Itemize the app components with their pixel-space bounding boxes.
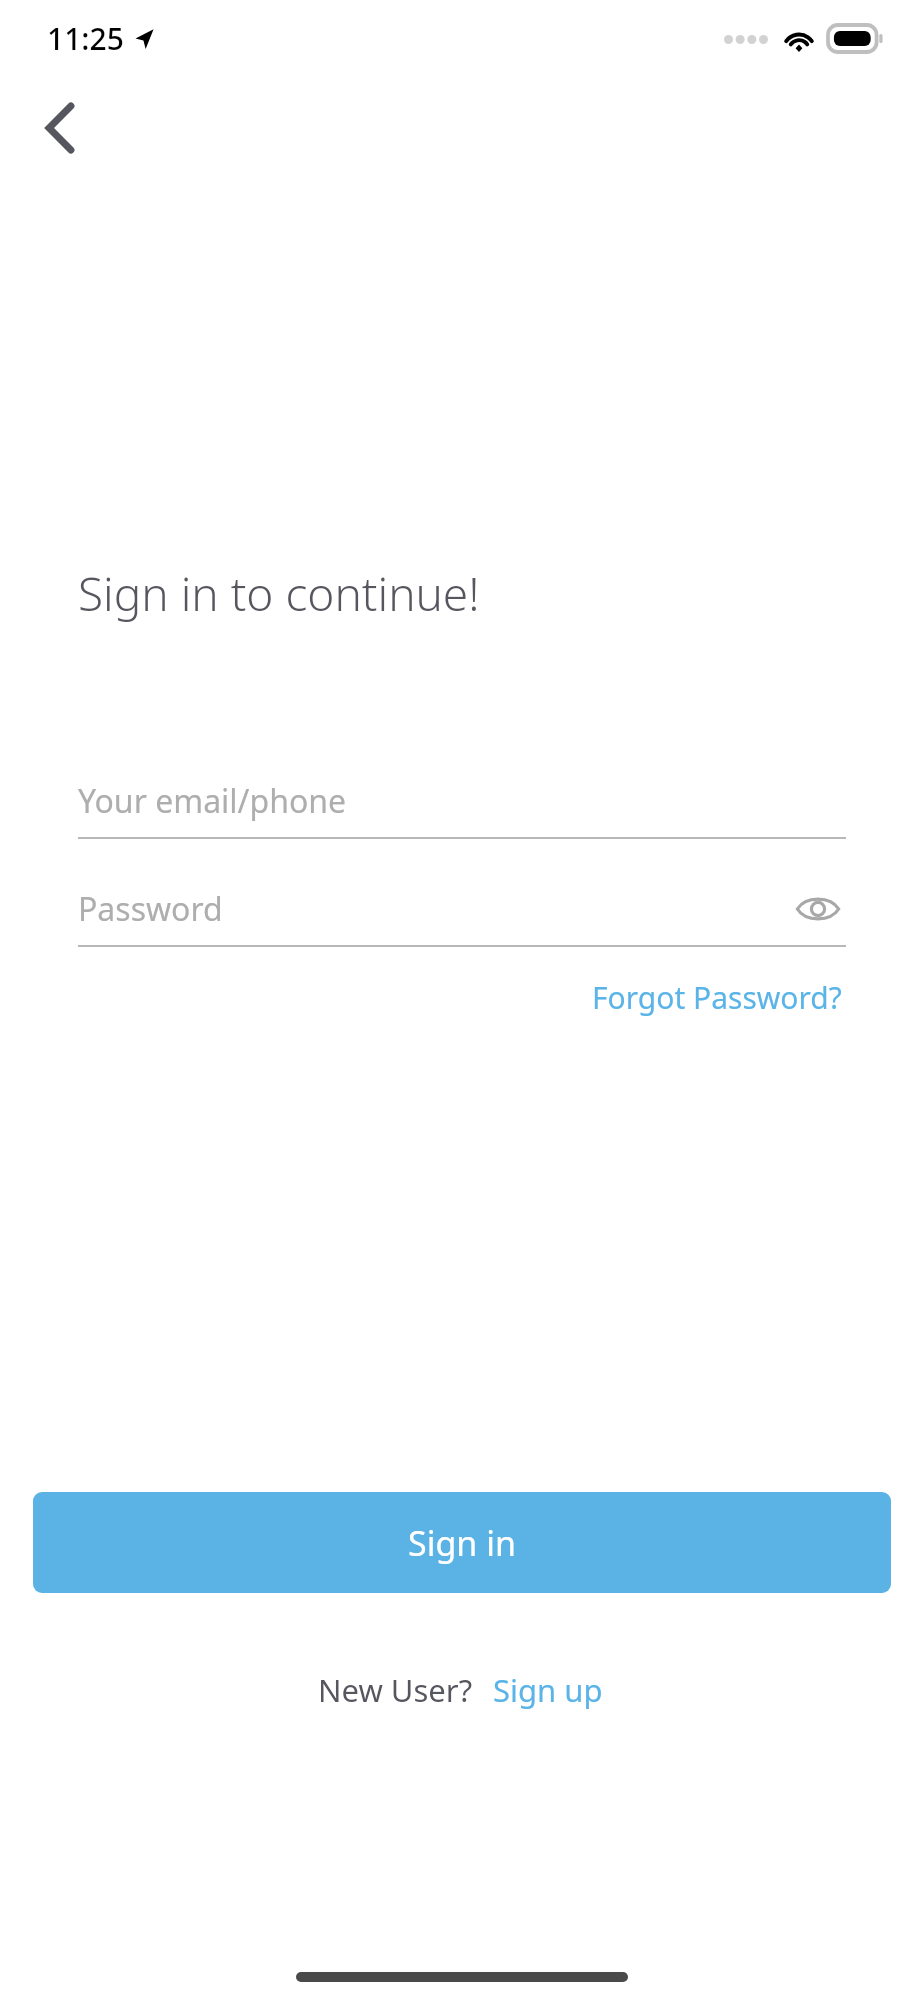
staticText: Sign up: [493, 1669, 603, 1711]
staticText: New User?: [318, 1669, 473, 1711]
button[interactable]: Back: [26, 94, 94, 162]
button[interactable]: Show password: [790, 881, 846, 937]
staticText: 11:25: [47, 18, 124, 59]
staticText: Sign in: [408, 1520, 516, 1566]
button[interactable]: Forgot Password?: [588, 971, 846, 1024]
button[interactable]: Password: [78, 873, 846, 945]
staticText: Sign in to continue!: [78, 562, 480, 625]
button[interactable]: Sign in: [33, 1492, 891, 1593]
button[interactable]: Your email/phone: [78, 765, 846, 837]
staticText: Password: [78, 887, 223, 931]
staticText: Forgot Password?: [592, 977, 842, 1018]
staticText: Your email/phone: [78, 779, 347, 823]
button[interactable]: Sign up: [489, 1665, 607, 1715]
